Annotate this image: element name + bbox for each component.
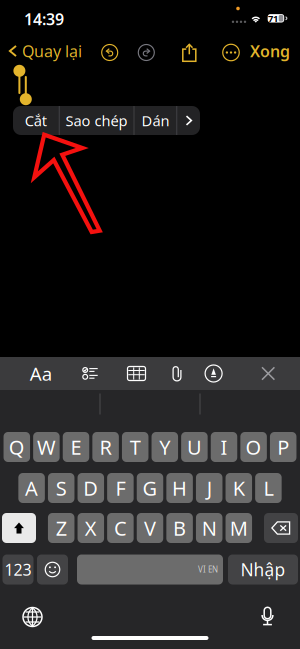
- button[interactable]: Emoji: [37, 554, 68, 584]
- button[interactable]: F: [107, 473, 134, 503]
- button[interactable]: Shift: [2, 513, 36, 543]
- button[interactable]: Markup: [199, 358, 229, 388]
- button[interactable]: R: [92, 432, 119, 462]
- staticText: Q: [9, 434, 25, 460]
- button[interactable]: E: [63, 432, 89, 462]
- button[interactable]: Cắt: [13, 106, 59, 135]
- staticText: X: [85, 515, 97, 541]
- staticText: W: [37, 434, 56, 460]
- staticText: K: [233, 475, 245, 501]
- button[interactable]: K: [225, 473, 252, 503]
- button[interactable]: M: [226, 513, 252, 543]
- button[interactable]: V: [137, 513, 163, 543]
- button[interactable]: Xong: [250, 35, 290, 67]
- staticText: F: [115, 475, 125, 501]
- button[interactable]: Dán: [134, 106, 176, 135]
- staticText: V: [144, 515, 156, 541]
- staticText: Z: [56, 515, 67, 541]
- button[interactable]: L: [255, 473, 282, 503]
- staticText: H: [172, 475, 187, 501]
- staticText: M: [230, 515, 248, 541]
- button[interactable]: G: [137, 473, 163, 503]
- staticText: I: [220, 434, 227, 460]
- button[interactable]: Space: [77, 554, 223, 584]
- staticText: 123: [4, 559, 31, 580]
- button[interactable]: Nhập: [228, 554, 298, 584]
- staticText: L: [263, 475, 273, 501]
- staticText: R: [100, 434, 112, 460]
- staticText: U: [187, 434, 202, 460]
- button[interactable]: W: [33, 432, 60, 462]
- button[interactable]: T: [122, 432, 148, 462]
- button[interactable]: D: [77, 473, 104, 503]
- staticText: D: [83, 475, 98, 501]
- staticText: O: [246, 434, 262, 460]
- staticText: Quay lại: [22, 40, 82, 62]
- button[interactable]: H: [166, 473, 193, 503]
- button[interactable]: A: [18, 473, 45, 503]
- button[interactable]: C: [107, 513, 134, 543]
- staticText: Xong: [250, 40, 290, 62]
- button[interactable]: S: [48, 473, 74, 503]
- button[interactable]: Delete: [264, 513, 298, 543]
- staticText: S: [56, 475, 67, 501]
- button[interactable]: More actions: [177, 106, 200, 135]
- button[interactable]: Table: [121, 358, 151, 388]
- button[interactable]: I: [211, 432, 237, 462]
- staticText: VI EN: [198, 564, 218, 575]
- staticText: C: [114, 515, 127, 541]
- button[interactable]: Checklist: [75, 358, 105, 388]
- staticText: G: [142, 475, 157, 501]
- button[interactable]: Hide keyboard: [253, 358, 283, 388]
- button[interactable]: Undo: [102, 44, 118, 60]
- button[interactable]: B: [166, 513, 193, 543]
- button[interactable]: More: [223, 44, 239, 61]
- button[interactable]: Sao chép: [60, 106, 134, 135]
- staticText: J: [207, 475, 212, 501]
- button[interactable]: P: [270, 432, 296, 462]
- button[interactable]: N: [196, 513, 222, 543]
- staticText: E: [70, 434, 81, 460]
- button[interactable]: Quay lại: [7, 35, 82, 67]
- button[interactable]: U: [181, 432, 208, 462]
- button[interactable]: Dictate: [260, 607, 274, 627]
- staticText: Dán: [141, 111, 169, 130]
- button[interactable]: Attach: [162, 358, 192, 388]
- staticText: Cắt: [25, 111, 47, 130]
- button[interactable]: Q: [4, 432, 30, 462]
- button[interactable]: Aa: [26, 358, 56, 388]
- button[interactable]: J: [196, 473, 222, 503]
- button[interactable]: X: [78, 513, 104, 543]
- button[interactable]: Redo: [138, 44, 154, 60]
- staticText: 14:39: [24, 8, 64, 30]
- staticText: 71: [268, 12, 278, 24]
- staticText: Y: [159, 434, 170, 460]
- button[interactable]: Next keyboard: [23, 607, 42, 626]
- staticText: A: [25, 475, 38, 501]
- button[interactable]: Z: [48, 513, 74, 543]
- button[interactable]: Share: [182, 43, 197, 62]
- staticText: P: [277, 434, 289, 460]
- staticText: T: [130, 434, 141, 460]
- button[interactable]: 123: [2, 554, 33, 584]
- staticText: Nhập: [240, 558, 285, 581]
- staticText: Aa: [30, 361, 52, 386]
- button[interactable]: O: [240, 432, 267, 462]
- staticText: B: [173, 515, 186, 541]
- button[interactable]: Y: [152, 432, 178, 462]
- staticText: N: [202, 515, 217, 541]
- staticText: Sao chép: [66, 111, 128, 130]
